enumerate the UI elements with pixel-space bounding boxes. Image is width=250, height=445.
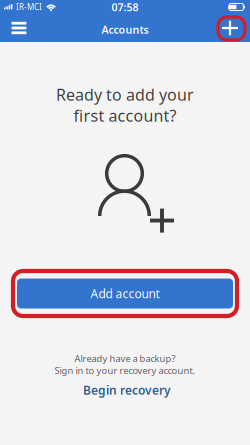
staticText: Begin recovery [83,382,171,398]
button[interactable]: Add account [10,267,240,319]
button[interactable]: Add account [213,14,247,42]
staticText: IR-MCI [16,2,42,12]
staticText: Accounts [101,22,148,37]
staticText: Add account [90,285,159,301]
staticText: 07:58 [111,0,138,14]
button[interactable]: Begin recovery [67,380,187,400]
button[interactable]: Menu [2,14,36,42]
staticText: Sign in to your recovery account. [54,364,195,377]
staticText: Ready to add your [56,84,194,105]
staticText: Already have a backup? [74,352,175,365]
staticText: first account? [73,105,176,126]
